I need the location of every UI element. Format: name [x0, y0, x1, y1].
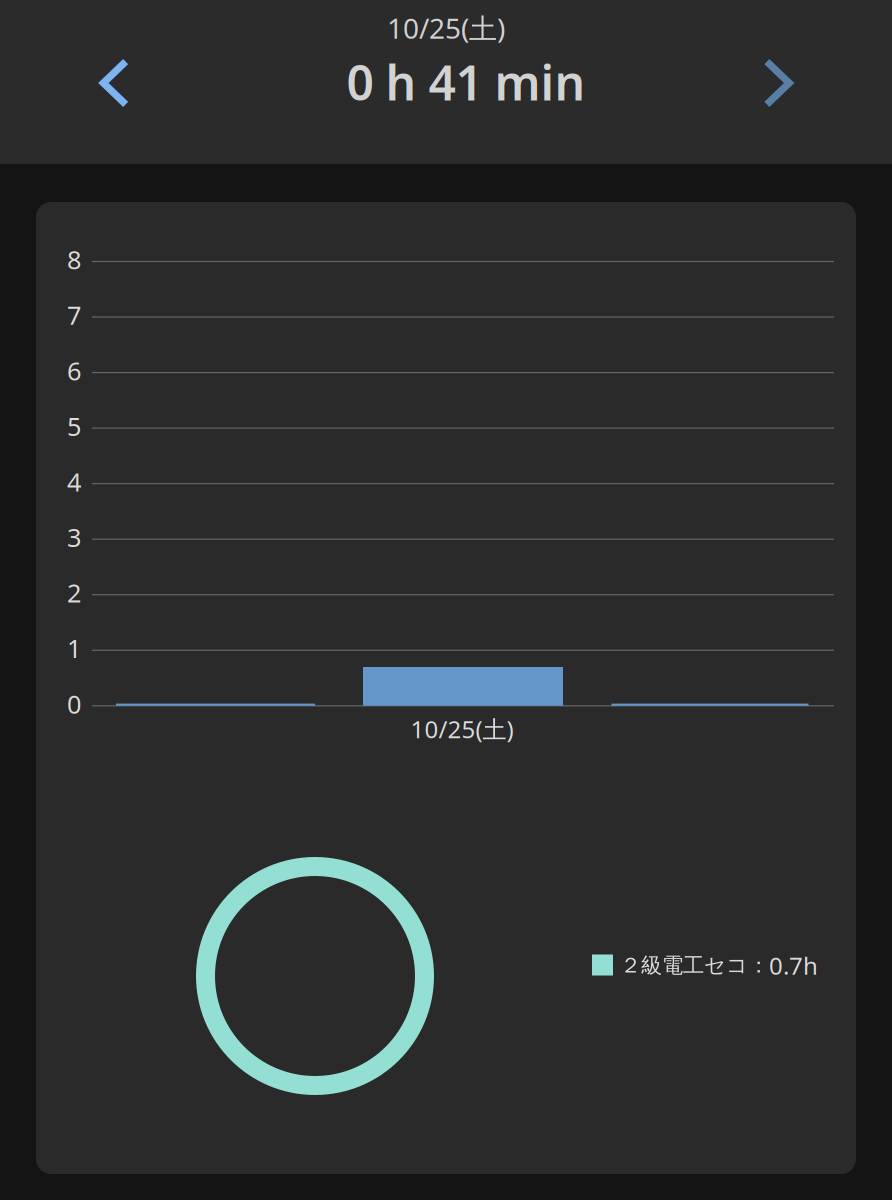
- button[interactable]: Next day: [732, 34, 824, 132]
- staticText: 4: [67, 465, 81, 498]
- staticText: 8: [67, 243, 81, 276]
- staticText: 5: [67, 409, 81, 443]
- button[interactable]: Previous day: [68, 34, 160, 132]
- staticText: 7: [67, 298, 81, 332]
- staticText: 2: [67, 576, 81, 609]
- staticText: 10/25(土): [387, 9, 505, 47]
- staticText: 1: [67, 631, 81, 665]
- staticText: ２級電工セコ：: [620, 952, 769, 979]
- staticText: 0: [67, 687, 81, 721]
- staticText: 0.7h: [769, 950, 818, 981]
- staticText: 3: [67, 520, 81, 554]
- staticText: 6: [67, 354, 81, 387]
- staticText: 10/25(土): [410, 713, 513, 745]
- staticText: 0 h 41 min: [346, 50, 585, 114]
